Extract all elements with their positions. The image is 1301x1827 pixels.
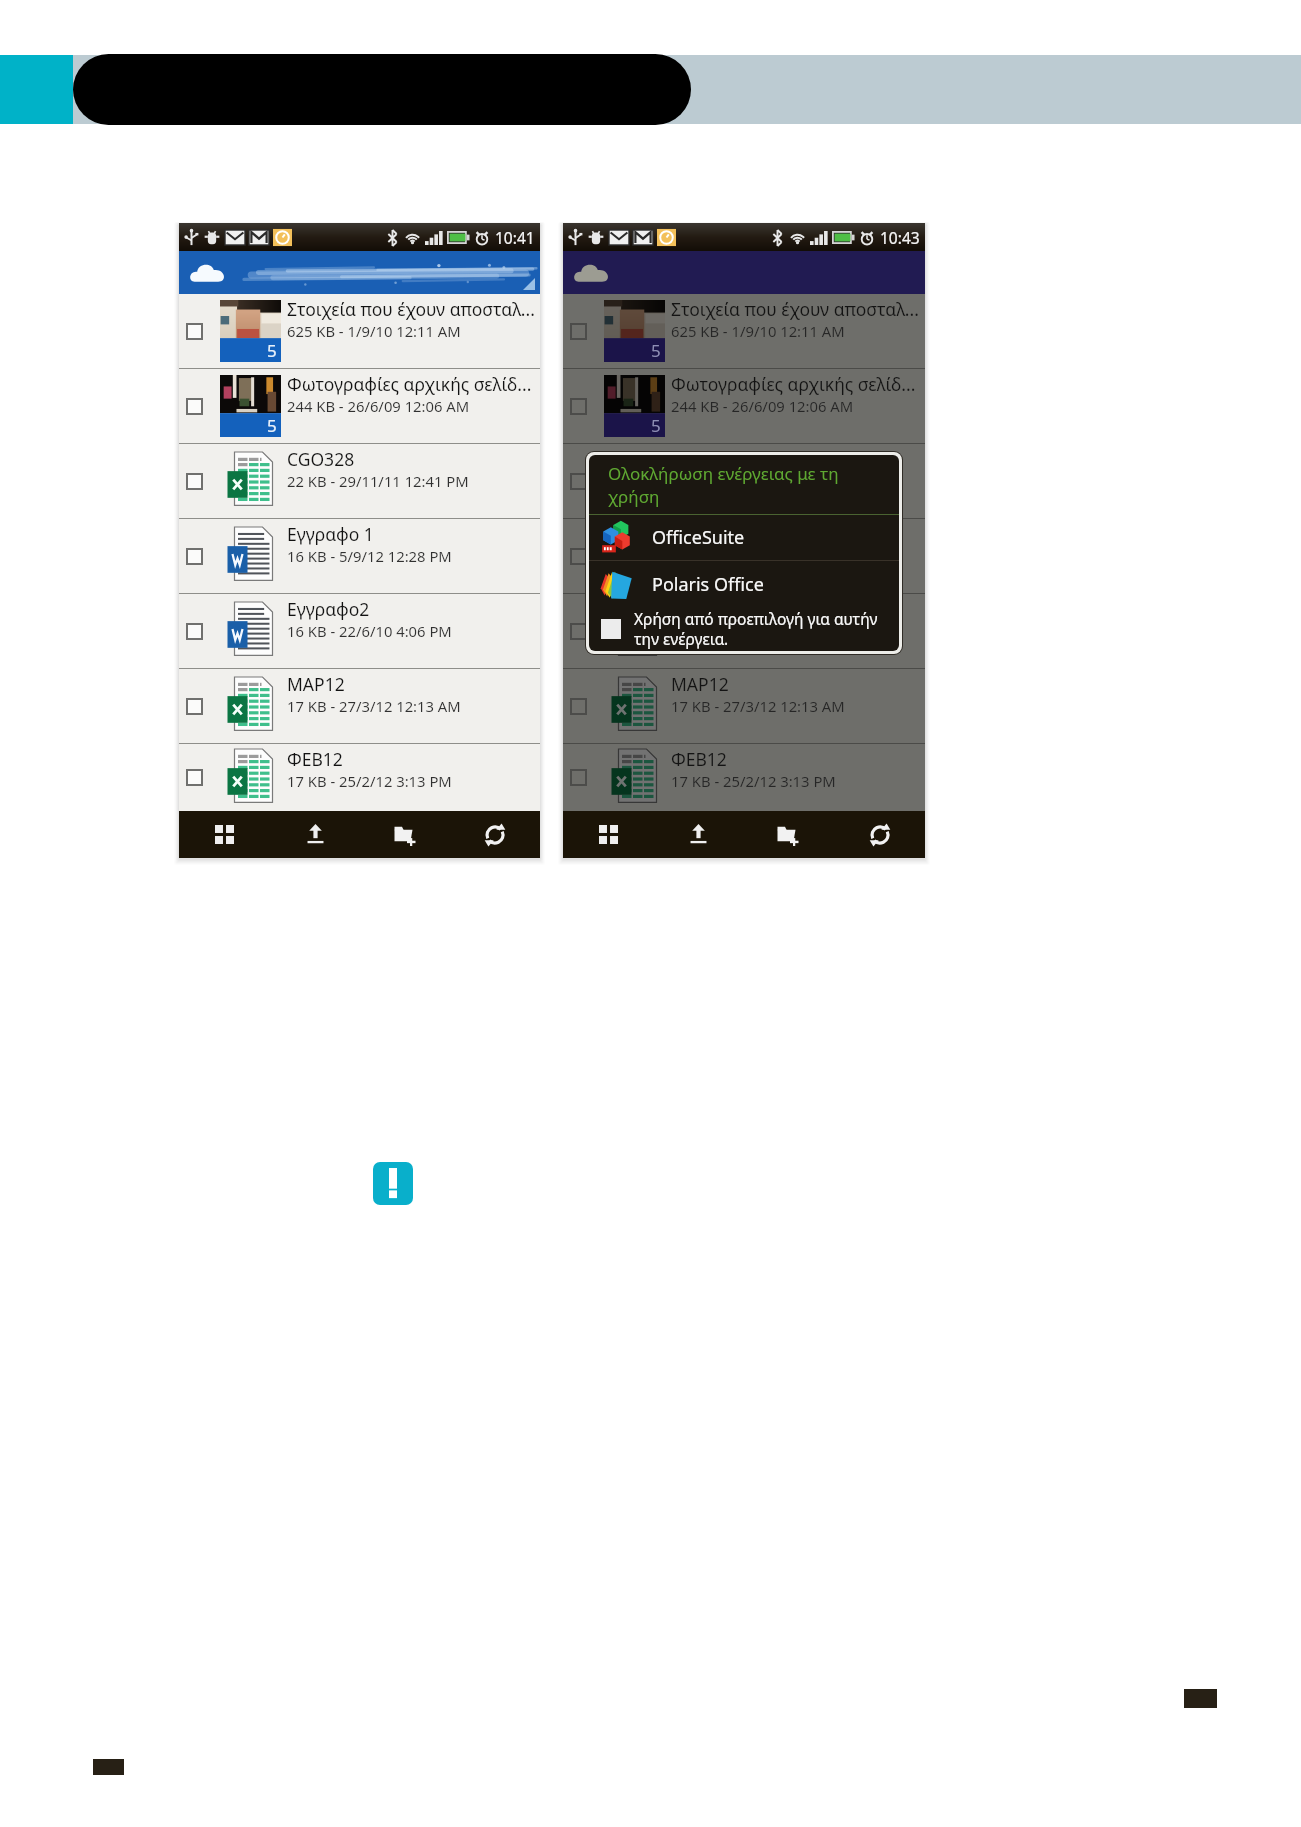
button[interactable]: Grid view — [563, 811, 653, 858]
button[interactable]: 5 — [563, 294, 925, 368]
button[interactable]: ΦΕΒ12 — [563, 744, 925, 811]
button[interactable]: Upload — [270, 811, 360, 858]
staticText: 16 KB - 22/6/10 4:06 PM — [671, 621, 836, 641]
button[interactable]: CGO328 — [179, 444, 540, 518]
staticText: Εγγραφο 1 — [671, 522, 758, 546]
staticText: 17 KB - 27/3/12 12:13 AM — [287, 696, 461, 716]
button[interactable]: SkyDrive — [563, 251, 925, 294]
staticText: Χρήση από προεπιλογή για αυτήν την ενέργ… — [634, 608, 899, 650]
staticText: OfficeSuite — [652, 525, 745, 550]
staticText: Φωτογραφίες αρχικής σελίδ... — [671, 372, 916, 396]
button[interactable]: Upload — [653, 811, 743, 858]
staticText: 5 — [267, 339, 277, 362]
staticText: 244 KB - 26/6/09 12:06 AM — [671, 396, 854, 416]
button[interactable]: Εγγραφο2 — [563, 594, 925, 668]
button[interactable]: Note — [373, 1162, 413, 1205]
staticText: Εγγραφο2 — [287, 597, 370, 621]
button[interactable]: 5 — [179, 294, 540, 368]
button[interactable]: 5 — [179, 369, 540, 443]
staticText: MAP12 — [287, 672, 345, 696]
staticText: 5 — [651, 339, 661, 362]
staticText: 22 KB - 29/11/11 12:41 PM — [287, 471, 469, 491]
button[interactable]: Εγγραφο2 — [179, 594, 540, 668]
button[interactable]: Χρήση από προεπιλογή για αυτήν την ενέργ… — [589, 607, 899, 651]
staticText: Εγγραφο 1 — [287, 522, 374, 546]
staticText: Στοιχεία που έχουν αποσταλ... — [287, 297, 535, 321]
staticText: 625 KB - 1/9/10 12:11 AM — [671, 321, 845, 341]
staticText: MAP12 — [671, 672, 729, 696]
staticText: 17 KB - 25/2/12 3:13 PM — [287, 771, 452, 791]
button[interactable]: Polaris Office — [589, 561, 899, 607]
staticText: 17 KB - 27/3/12 12:13 AM — [671, 696, 845, 716]
staticText: 5 — [267, 414, 277, 437]
staticText: 17 KB - 25/2/12 3:13 PM — [671, 771, 836, 791]
button[interactable]: OfficeSuite — [589, 515, 899, 560]
staticText: ΦΕΒ12 — [287, 747, 343, 771]
staticText: 625 KB - 1/9/10 12:11 AM — [287, 321, 461, 341]
staticText: ΦΕΒ12 — [671, 747, 727, 771]
staticText: CGO328 — [287, 447, 355, 471]
button[interactable]: Refresh — [450, 811, 540, 858]
button[interactable]: New folder — [360, 811, 450, 858]
staticText: 16 KB - 22/6/10 4:06 PM — [287, 621, 452, 641]
button[interactable]: ΦΕΒ12 — [179, 744, 540, 811]
staticText: Εγγραφο2 — [671, 597, 754, 621]
button[interactable]: 5 — [563, 369, 925, 443]
staticText: Στοιχεία που έχουν αποσταλ... — [671, 297, 919, 321]
staticText: 10:41 — [495, 227, 535, 248]
staticText: 10:43 — [880, 227, 920, 248]
staticText: Φωτογραφίες αρχικής σελίδ... — [287, 372, 532, 396]
staticText: CGO328 — [671, 447, 739, 471]
staticText: 22 KB - 29/11/11 12:41 PM — [671, 471, 853, 491]
button[interactable]: Εγγραφο 1 — [179, 519, 540, 593]
button[interactable]: Εγγραφο 1 — [563, 519, 925, 593]
staticText: Ολοκλήρωση ενέργειας με τη χρήση — [608, 462, 847, 508]
staticText: 16 KB - 5/9/12 12:28 PM — [287, 546, 452, 566]
button[interactable]: MAP12 — [563, 669, 925, 743]
staticText: 16 KB - 5/9/12 12:28 PM — [671, 546, 836, 566]
button[interactable]: CGO328 — [563, 444, 925, 518]
staticText: Polaris Office — [652, 572, 764, 597]
button[interactable]: New folder — [743, 811, 834, 858]
staticText: 244 KB - 26/6/09 12:06 AM — [287, 396, 470, 416]
button[interactable]: Refresh — [834, 811, 925, 858]
staticText: 5 — [651, 414, 661, 437]
button[interactable]: Grid view — [179, 811, 270, 858]
button[interactable]: MAP12 — [179, 669, 540, 743]
button[interactable]: SkyDrive — [179, 251, 540, 294]
